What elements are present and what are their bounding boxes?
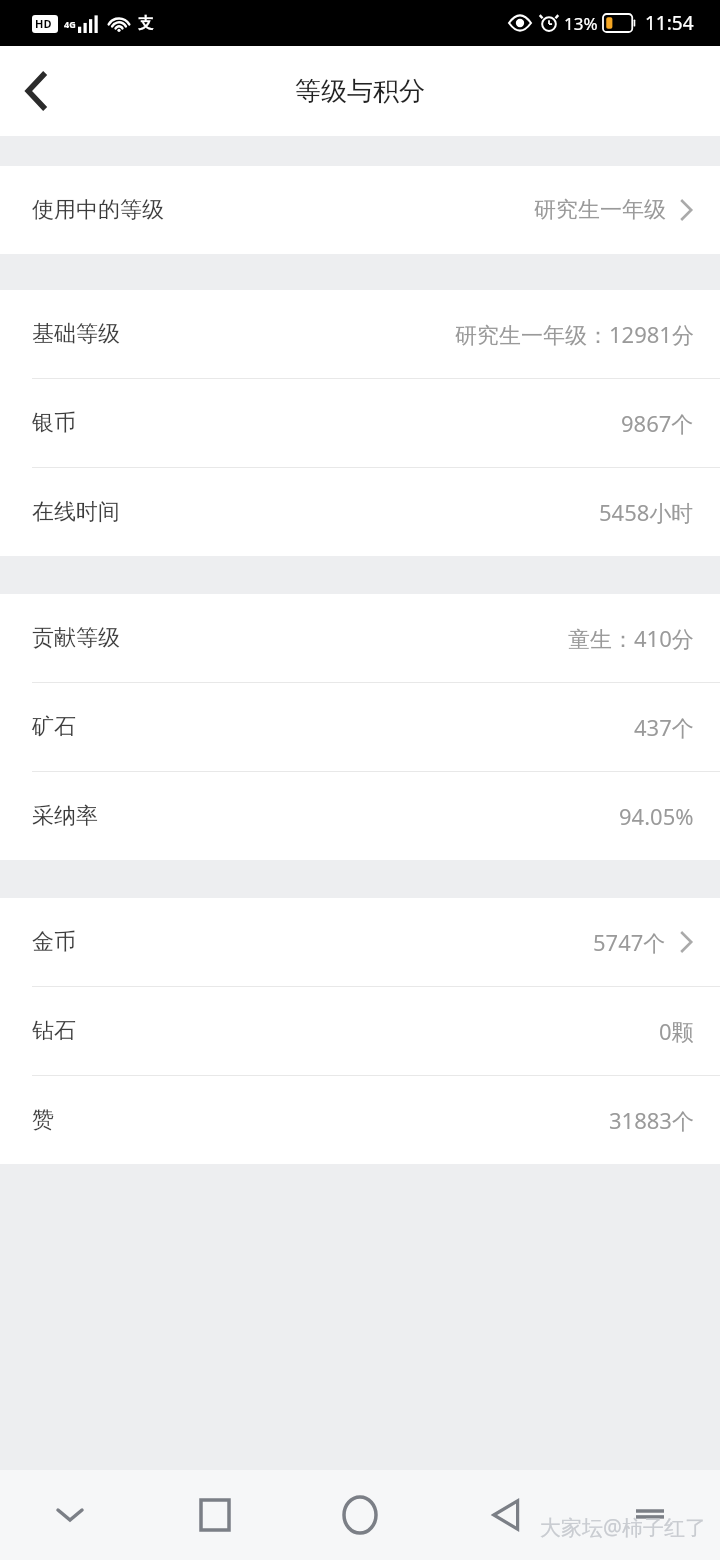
staticText: 94.05% [619, 801, 694, 831]
staticText: 9867个 [621, 408, 694, 438]
staticText: 金币 [32, 928, 76, 956]
staticText: 支 [138, 14, 153, 33]
button[interactable]: 使用中的等级 [0, 166, 720, 254]
staticText: 研究生一年级 [534, 196, 666, 224]
button[interactable]: 矿石 [0, 683, 720, 771]
button[interactable]: 在线时间 [0, 468, 720, 556]
button[interactable]: Recents [185, 1485, 245, 1545]
staticText: 使用中的等级 [32, 196, 164, 224]
staticText: 31883个 [609, 1105, 694, 1135]
staticText: 5747个 [593, 927, 666, 957]
button[interactable]: Back [475, 1485, 535, 1545]
staticText: 4G [64, 18, 76, 30]
staticText: HD [35, 16, 52, 31]
staticText: 等级与积分 [295, 75, 425, 108]
staticText: 大家坛@柿子红了 [540, 1513, 706, 1542]
staticText: 童生：410分 [568, 623, 694, 653]
staticText: 437个 [634, 712, 694, 742]
button[interactable]: 赞 [0, 1076, 720, 1164]
button[interactable]: 采纳率 [0, 772, 720, 860]
staticText: 5458小时 [599, 497, 694, 527]
staticText: 0颗 [659, 1016, 694, 1046]
button[interactable]: Menu [620, 1485, 680, 1545]
staticText: 在线时间 [32, 498, 120, 526]
button[interactable]: 银币 [0, 379, 720, 467]
button[interactable]: Home [330, 1485, 390, 1545]
button[interactable]: Hide [40, 1485, 100, 1545]
button[interactable]: Back [0, 55, 72, 127]
button[interactable]: 基础等级 [0, 290, 720, 378]
staticText: 矿石 [32, 713, 76, 741]
button[interactable]: 金币 [0, 898, 720, 986]
staticText: 基础等级 [32, 320, 120, 348]
staticText: 采纳率 [32, 802, 98, 830]
staticText: 贡献等级 [32, 624, 120, 652]
staticText: 11:54 [645, 10, 694, 36]
staticText: 赞 [32, 1106, 54, 1134]
staticText: 研究生一年级：12981分 [455, 319, 694, 349]
staticText: 13% [564, 12, 598, 35]
button[interactable]: 钻石 [0, 987, 720, 1075]
button[interactable]: 贡献等级 [0, 594, 720, 682]
staticText: 钻石 [32, 1017, 76, 1045]
staticText: 银币 [32, 409, 76, 437]
